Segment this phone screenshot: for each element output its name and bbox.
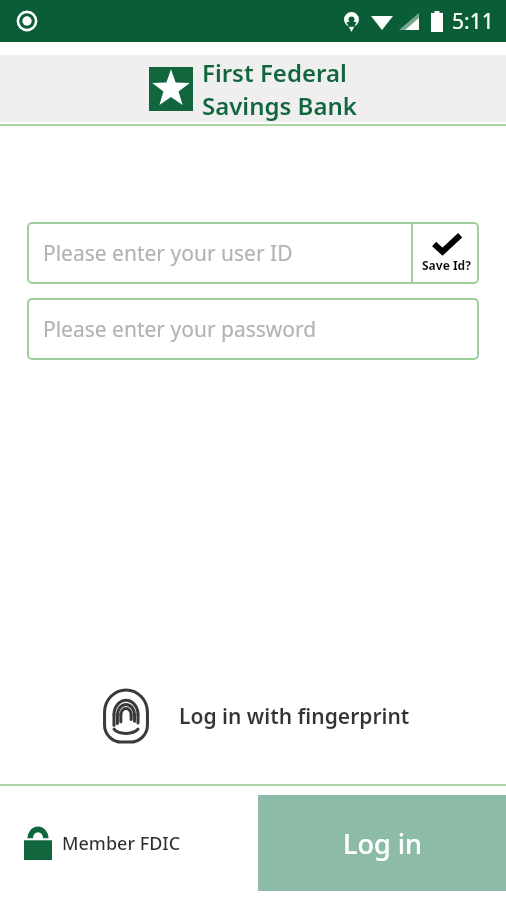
staticText: Log in with fingerprint	[179, 702, 410, 731]
button[interactable]: Log in with fingerprint	[0, 681, 506, 751]
staticText: Member FDIC	[62, 831, 181, 856]
button[interactable]: Save ID enabled	[413, 222, 479, 284]
staticText: Savings Bank	[202, 89, 357, 122]
staticText: Please enter your password	[43, 315, 317, 344]
button[interactable]: Member FDIC	[24, 826, 181, 860]
staticText: Log in	[343, 825, 422, 862]
staticText: Please enter your user ID	[43, 239, 293, 268]
staticText: Save Id?	[422, 257, 471, 273]
staticText: 5:11	[452, 7, 494, 36]
staticText: First Federal	[202, 56, 347, 89]
button[interactable]: Please enter your user ID	[27, 222, 411, 284]
other: Save ID enabled	[433, 234, 461, 254]
button[interactable]: Please enter your password	[27, 298, 479, 360]
button[interactable]: Log in	[258, 795, 506, 891]
